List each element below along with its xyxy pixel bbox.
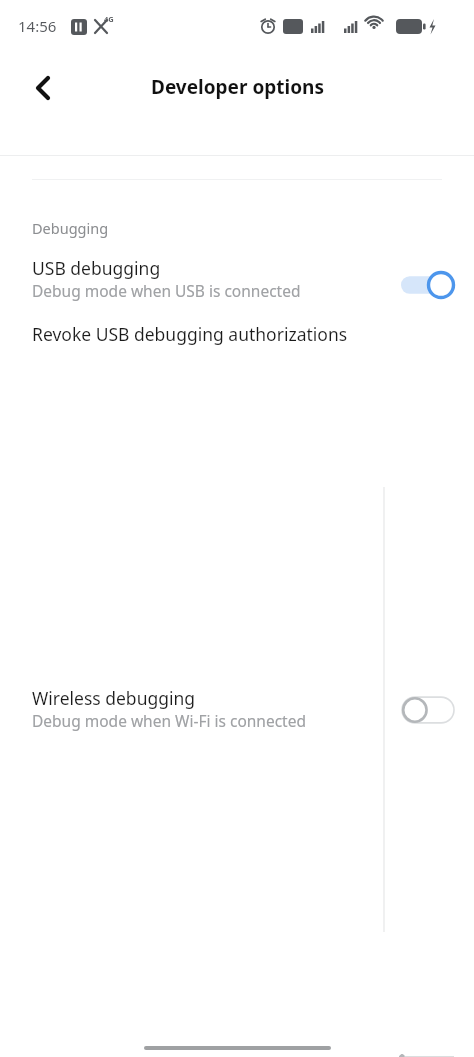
staticText: 14:56	[18, 16, 57, 36]
staticText: Developer options	[151, 74, 324, 100]
staticText: Revoke USB debugging authorizations	[32, 322, 348, 346]
staticText: Debugging	[32, 218, 109, 238]
staticText: Debug mode when Wi-Fi is connected	[32, 710, 306, 731]
staticText: Wireless debugging	[32, 686, 196, 710]
button[interactable]	[401, 271, 455, 299]
button[interactable]	[401, 696, 455, 724]
button[interactable]: Revoke USB debugging authorizations	[0, 314, 474, 362]
button[interactable]: Back	[20, 66, 64, 110]
staticText: USB debugging	[32, 256, 161, 280]
staticText: 4G	[104, 14, 114, 24]
button[interactable]: Wireless debugging	[0, 362, 474, 1057]
staticText: Debug mode when USB is connected	[32, 280, 301, 301]
button[interactable]: USB debugging	[0, 256, 474, 314]
